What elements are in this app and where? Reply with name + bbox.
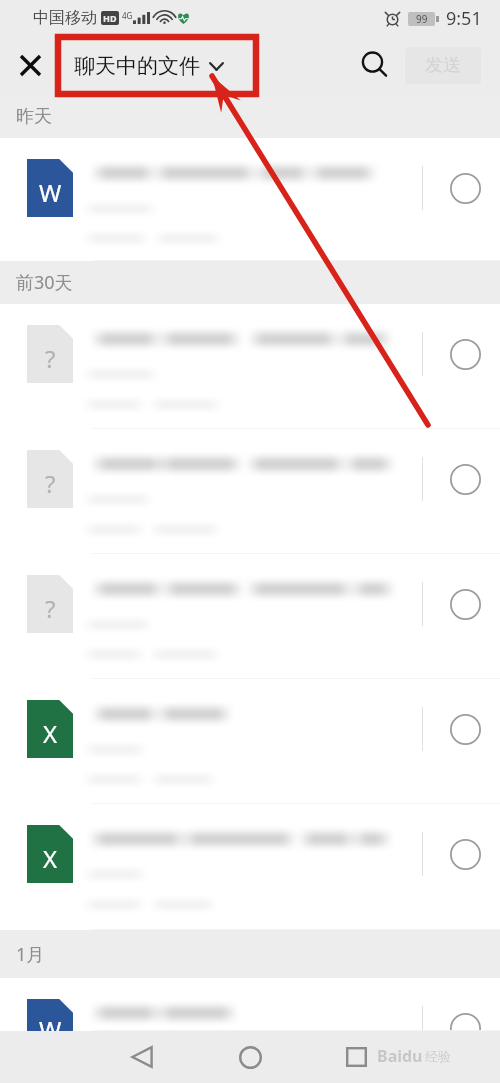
button[interactable]: Select file: [440, 579, 490, 629]
staticText: 99: [416, 12, 428, 26]
staticText: 9:51: [446, 6, 482, 31]
staticText: HD: [103, 12, 117, 24]
button[interactable]: Select file: [440, 163, 490, 213]
button[interactable]: Search: [353, 44, 397, 88]
button[interactable]: Select file: [440, 454, 490, 504]
staticText: Baidu: [377, 1045, 423, 1067]
staticText: 中国移动: [33, 8, 97, 28]
button[interactable]: 发送: [405, 47, 481, 84]
staticText: W: [39, 1013, 62, 1031]
staticText: W: [39, 176, 62, 209]
staticText: 聊天中的文件: [74, 53, 200, 79]
staticText: X: [43, 717, 58, 750]
button[interactable]: Select file: [440, 329, 490, 379]
staticText: 前30天: [16, 270, 73, 295]
button[interactable]: Back: [118, 1031, 166, 1083]
button[interactable]: Select file: [440, 1003, 490, 1031]
staticText: 经验: [425, 1048, 451, 1064]
button[interactable]: X: [0, 804, 500, 930]
button[interactable]: Select file: [440, 704, 490, 754]
button[interactable]: ?: [0, 304, 500, 429]
button[interactable]: Recent apps: [332, 1031, 380, 1083]
button[interactable]: W: [0, 978, 500, 1031]
button[interactable]: Home: [226, 1031, 274, 1083]
button[interactable]: W: [0, 138, 500, 261]
button[interactable]: ?: [0, 429, 500, 554]
staticText: ?: [45, 342, 56, 375]
button[interactable]: 聊天中的文件: [66, 47, 232, 85]
button[interactable]: ?: [0, 554, 500, 679]
button[interactable]: Close: [8, 43, 53, 88]
staticText: 发送: [425, 54, 461, 77]
staticText: X: [43, 842, 58, 875]
staticText: 1月: [16, 942, 45, 967]
staticText: ?: [45, 592, 56, 625]
button[interactable]: X: [0, 679, 500, 804]
staticText: 4G: [122, 10, 133, 21]
button[interactable]: Select file: [440, 829, 490, 879]
staticText: 昨天: [16, 105, 52, 128]
staticText: ?: [45, 467, 56, 500]
